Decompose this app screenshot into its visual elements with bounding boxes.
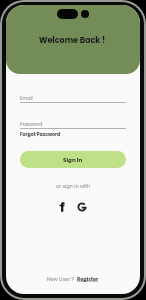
staticText: Register — [77, 276, 99, 283]
button[interactable]: Forgot Password — [20, 131, 61, 138]
staticText: Welcome Back ! — [39, 35, 106, 46]
button[interactable]: Sign in with Google — [76, 201, 88, 213]
button[interactable]: Sign In — [20, 151, 126, 168]
staticText: Forgot Password — [20, 131, 61, 138]
staticText: or sign in with — [56, 183, 91, 190]
staticText: Password — [20, 121, 43, 128]
staticText: Email — [20, 95, 33, 102]
button[interactable]: Sign in with Facebook — [56, 201, 68, 213]
button[interactable]: Register — [77, 276, 99, 283]
staticText: Sign In — [63, 156, 83, 164]
staticText: New User ? — [47, 276, 74, 283]
